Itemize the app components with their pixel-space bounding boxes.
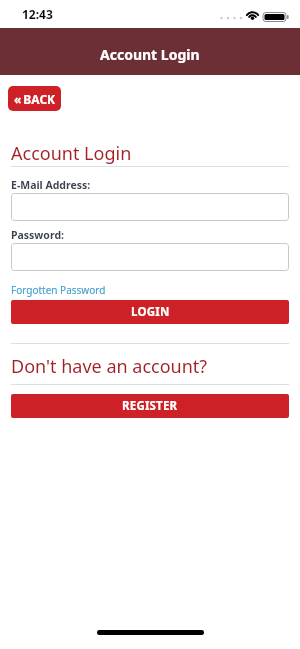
staticText: LOGIN (131, 304, 170, 320)
button[interactable]: Forgotten Password (11, 283, 106, 297)
staticText: Account Login (100, 45, 200, 64)
button[interactable] (11, 193, 289, 221)
staticText: Account Login (11, 141, 132, 166)
staticText: « BACK (14, 91, 56, 107)
staticText: E-Mail Address: (11, 178, 91, 192)
button[interactable] (11, 243, 289, 271)
button[interactable]: « BACK (8, 86, 61, 111)
staticText: 12:43 (22, 6, 53, 22)
staticText: Don't have an account? (11, 354, 208, 379)
staticText: REGISTER (122, 398, 178, 414)
staticText: Password: (11, 228, 64, 242)
button[interactable]: REGISTER (11, 394, 289, 418)
button[interactable]: LOGIN (11, 300, 289, 324)
